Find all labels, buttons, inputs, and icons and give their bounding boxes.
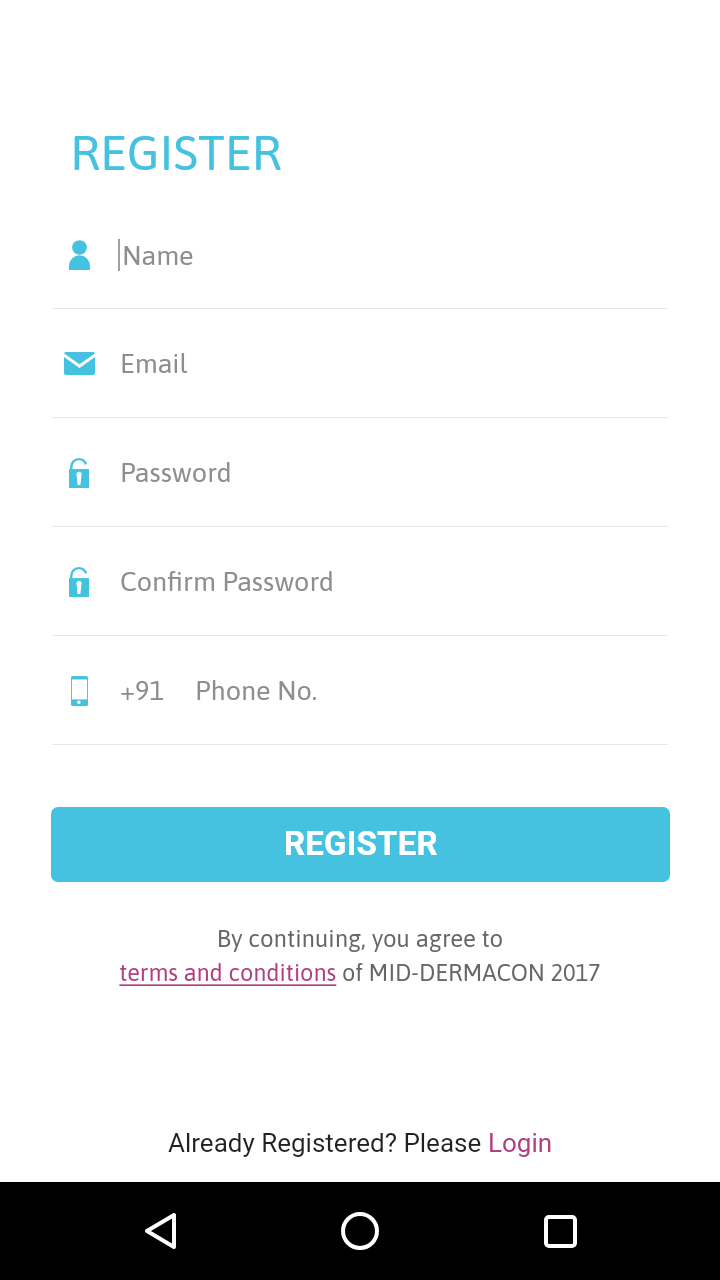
button[interactable]: REGISTER [51, 807, 670, 882]
button[interactable]: +91 [0, 636, 720, 745]
staticText: Phone No. [195, 675, 318, 706]
button[interactable]: Login [488, 1128, 553, 1158]
button[interactable]: Back [120, 1191, 200, 1271]
staticText: REGISTER [284, 824, 438, 863]
staticText: +91 [120, 675, 165, 706]
staticText: Already Registered? Please [168, 1128, 488, 1158]
button[interactable]: Confirm Password [0, 527, 720, 636]
button[interactable]: Home [320, 1191, 400, 1271]
button[interactable]: Recent apps [520, 1191, 600, 1271]
button[interactable]: Email [0, 309, 720, 418]
button[interactable]: Name [0, 200, 720, 309]
staticText: Confirm Password [120, 566, 335, 597]
staticText: By continuing, you agree to [0, 925, 720, 953]
button[interactable]: Password [0, 418, 720, 527]
staticText: REGISTER [70, 124, 282, 180]
staticText: terms and conditions of MID-DERMACON 201… [0, 959, 720, 986]
staticText: Email [120, 348, 188, 379]
staticText: Password [120, 457, 232, 488]
staticText: Name [122, 240, 194, 271]
